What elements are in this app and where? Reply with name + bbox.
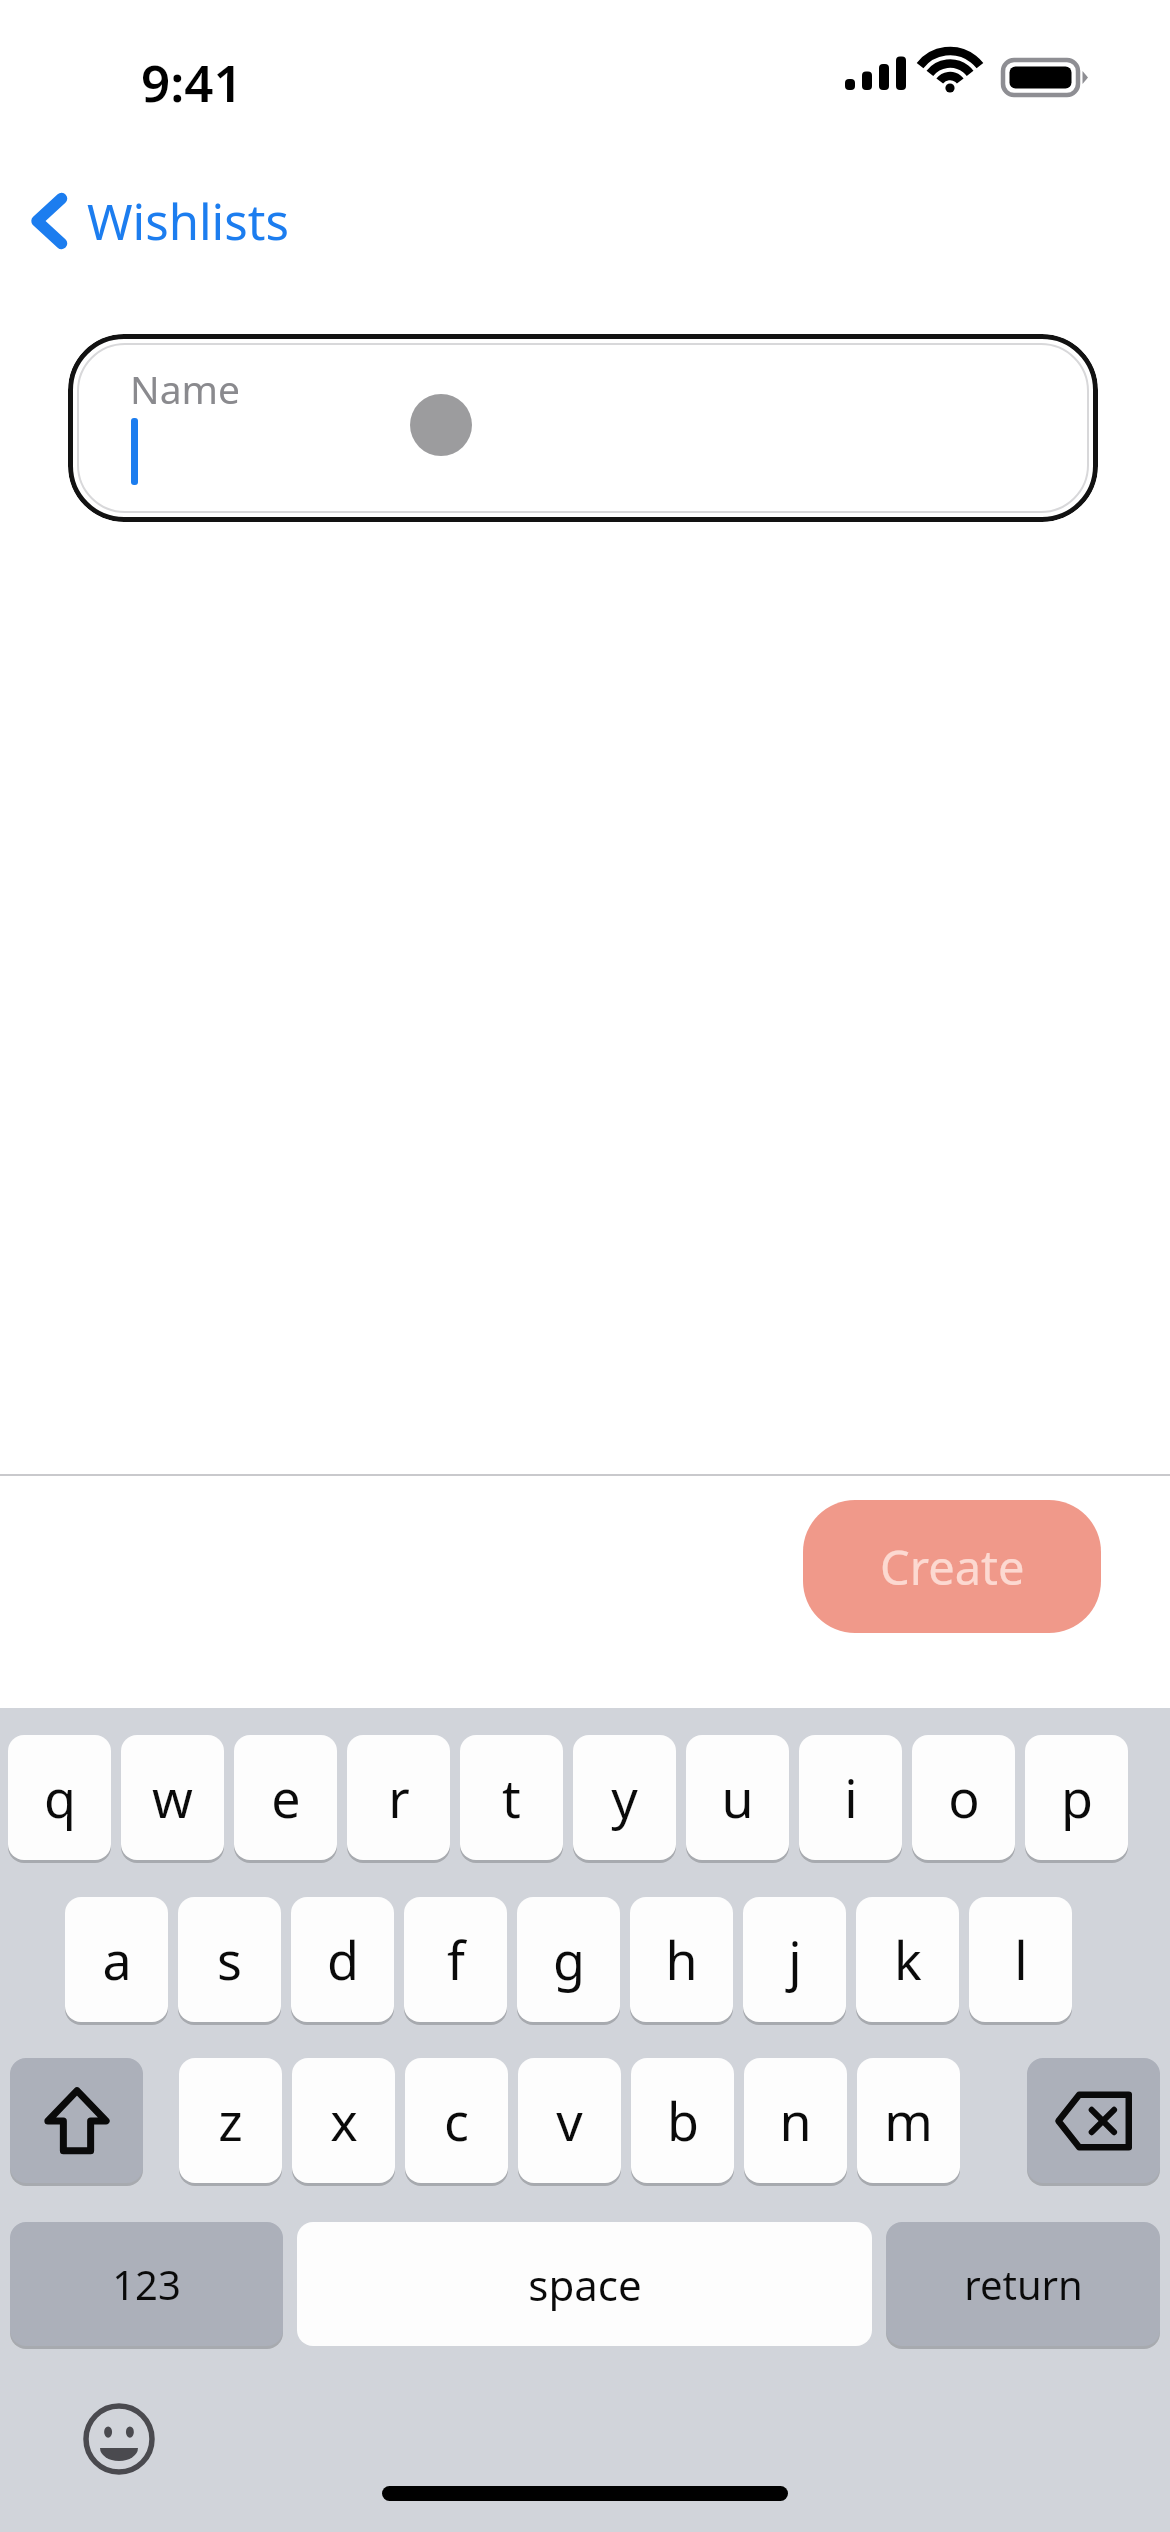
staticText: i (844, 1762, 858, 1833)
button[interactable]: z (179, 2058, 282, 2183)
button[interactable]: l (969, 1897, 1072, 2022)
button[interactable]: o (912, 1735, 1015, 1860)
staticText: s (217, 1924, 242, 1995)
button[interactable]: q (8, 1735, 111, 1860)
button[interactable]: g (517, 1897, 620, 2022)
button[interactable]: Shift (10, 2058, 143, 2183)
button[interactable]: h (630, 1897, 733, 2022)
staticText: a (102, 1924, 132, 1995)
staticText: d (327, 1924, 359, 1995)
button[interactable]: v (518, 2058, 621, 2183)
button[interactable]: f (404, 1897, 507, 2022)
staticText: e (271, 1762, 301, 1833)
staticText: 9:41 (141, 47, 243, 116)
button[interactable]: y (573, 1735, 676, 1860)
button[interactable]: Backspace (1027, 2058, 1160, 2183)
staticText: g (553, 1924, 585, 1995)
staticText: t (502, 1762, 521, 1833)
staticText: w (152, 1762, 193, 1833)
staticText: h (665, 1924, 698, 1995)
staticText: c (444, 2085, 469, 2156)
button[interactable]: e (234, 1735, 337, 1860)
staticText: p (1061, 1762, 1093, 1833)
button[interactable]: p (1025, 1735, 1128, 1860)
button[interactable]: b (631, 2058, 734, 2183)
staticText: space (528, 2256, 642, 2313)
button[interactable]: j (743, 1897, 846, 2022)
staticText: 123 (112, 2257, 181, 2311)
button[interactable]: 123 (10, 2222, 283, 2346)
button[interactable]: n (744, 2058, 847, 2183)
button[interactable]: c (405, 2058, 508, 2183)
staticText: k (894, 1924, 922, 1995)
staticText: Wishlists (87, 188, 289, 255)
button[interactable]: i (799, 1735, 902, 1860)
button[interactable]: Create (803, 1500, 1101, 1633)
button[interactable]: m (857, 2058, 960, 2183)
button[interactable]: s (178, 1897, 281, 2022)
button[interactable]: t (460, 1735, 563, 1860)
staticText: u (721, 1762, 754, 1833)
button[interactable]: w (121, 1735, 224, 1860)
button[interactable]: u (686, 1735, 789, 1860)
staticText: q (44, 1762, 76, 1833)
staticText: m (884, 2085, 933, 2156)
button[interactable]: Name (68, 334, 1098, 522)
staticText: return (964, 2257, 1083, 2311)
button[interactable]: x (292, 2058, 395, 2183)
button[interactable]: return (886, 2222, 1160, 2346)
button[interactable]: Emoji keyboard (80, 2400, 158, 2478)
staticText: j (788, 1924, 802, 1995)
button[interactable]: a (65, 1897, 168, 2022)
button[interactable]: d (291, 1897, 394, 2022)
staticText: r (388, 1762, 410, 1833)
staticText: y (611, 1762, 638, 1833)
staticText: v (556, 2085, 583, 2156)
staticText: Name (130, 362, 240, 415)
button[interactable]: Choose colour (410, 394, 472, 456)
staticText: n (779, 2085, 812, 2156)
staticText: z (218, 2085, 243, 2156)
staticText: Create (880, 1535, 1025, 1599)
staticText: b (667, 2085, 699, 2156)
staticText: f (447, 1924, 465, 1995)
staticText: o (948, 1762, 980, 1833)
button[interactable]: r (347, 1735, 450, 1860)
button[interactable]: space (297, 2222, 872, 2346)
staticText: l (1014, 1924, 1028, 1995)
button[interactable]: Wishlists (18, 168, 338, 274)
staticText: x (330, 2085, 358, 2156)
button[interactable]: k (856, 1897, 959, 2022)
